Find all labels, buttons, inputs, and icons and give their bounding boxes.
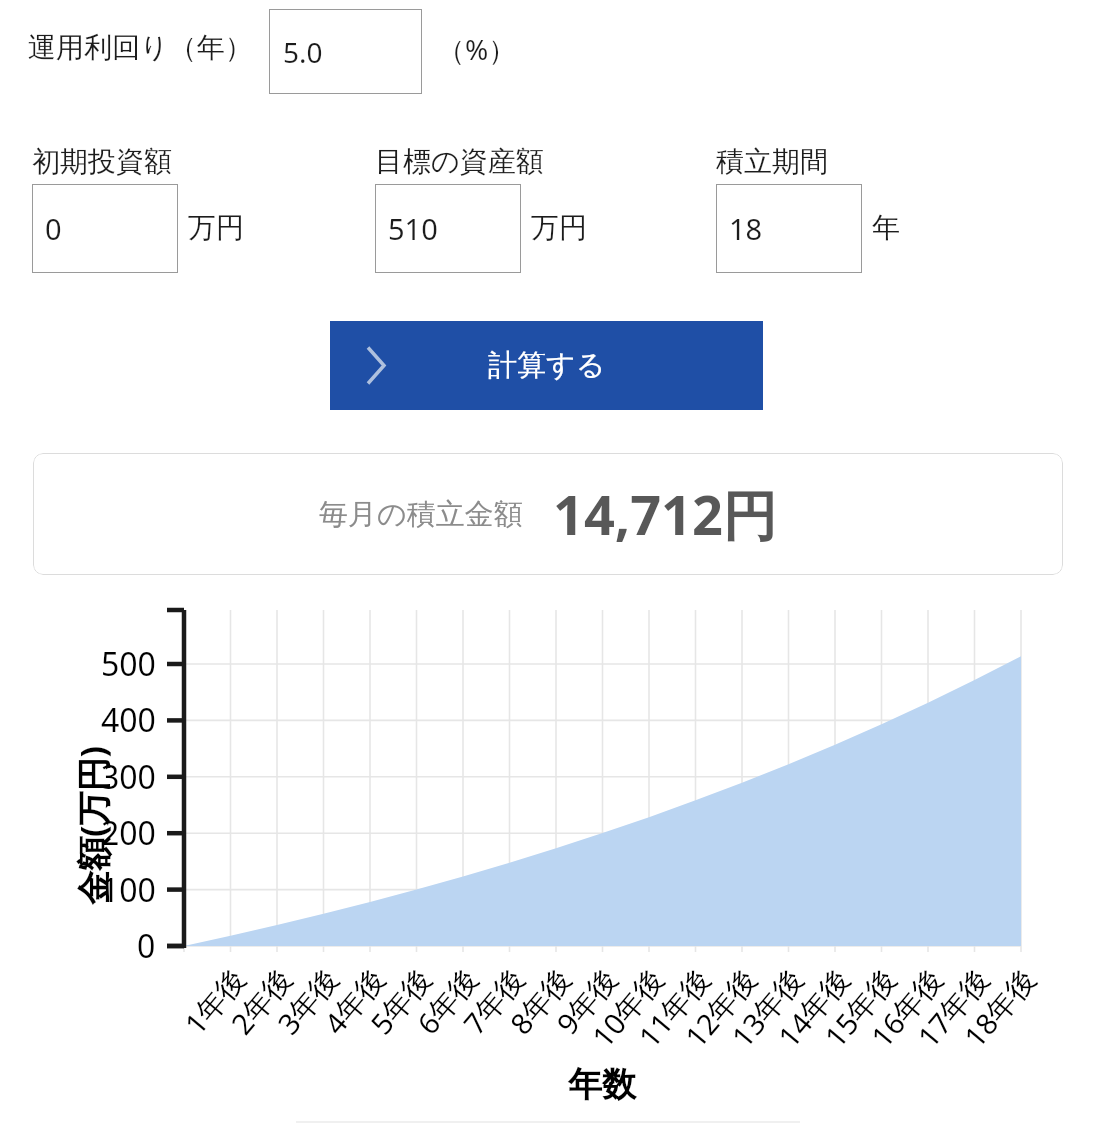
staticText: 0 [45, 209, 62, 248]
staticText: 目標の資産額 [375, 144, 544, 179]
staticText: 積立期間 [716, 144, 828, 179]
staticText: 初期投資額 [32, 144, 172, 179]
staticText: 計算する [488, 347, 606, 384]
button[interactable]: 計算する [330, 321, 763, 410]
staticText: 万円 [188, 210, 244, 245]
button[interactable]: 510 [375, 184, 521, 273]
button[interactable]: 0 [32, 184, 178, 273]
staticText: （%） [437, 30, 517, 68]
button[interactable]: 毎月の積立金額 [33, 453, 1063, 575]
staticText: 年 [872, 210, 900, 245]
staticText: 18 [729, 209, 763, 248]
staticText: 5.0 [283, 33, 323, 71]
button[interactable]: 18 [716, 184, 862, 273]
staticText: 14,712円 [553, 477, 777, 551]
staticText: 万円 [531, 210, 587, 245]
staticText: 510 [388, 209, 438, 248]
staticText: 毎月の積立金額 [319, 496, 523, 533]
button[interactable]: 5.0 [269, 9, 422, 94]
staticText: 運用利回り（年） [28, 30, 253, 65]
